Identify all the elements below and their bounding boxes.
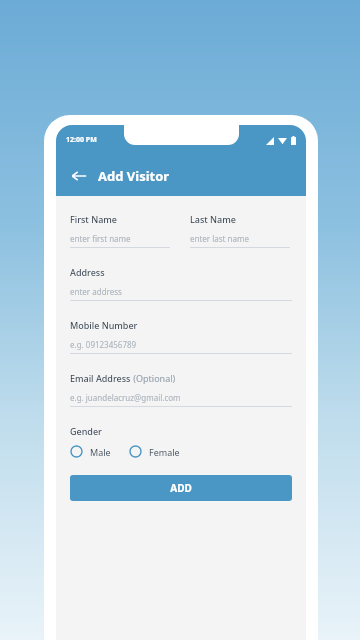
button[interactable]: Last Name <box>190 213 290 248</box>
button[interactable]: Email Address <box>70 372 292 407</box>
button[interactable]: Back <box>68 165 90 187</box>
staticText: e.g. juandelacruz@gmail.com <box>70 392 181 403</box>
staticText: Add Visitor <box>98 167 170 185</box>
staticText: Mobile Number <box>70 319 138 331</box>
staticText: Address <box>70 266 105 278</box>
staticText: Last Name <box>190 213 236 225</box>
staticText: Email Address <box>70 372 131 384</box>
staticText: First Name <box>70 213 117 225</box>
button[interactable]: ADD <box>70 475 292 501</box>
button[interactable]: First Name <box>70 213 170 248</box>
staticText: 12:00 PM <box>66 135 97 145</box>
button[interactable]: Address <box>70 266 292 301</box>
staticText: Male <box>90 446 111 458</box>
staticText: (Optional) <box>131 372 176 384</box>
staticText: enter first name <box>70 233 131 244</box>
staticText: Female <box>149 446 180 458</box>
staticText: enter address <box>70 286 122 297</box>
button[interactable]: Female <box>129 445 180 458</box>
staticText: enter last name <box>190 233 250 244</box>
staticText: ADD <box>170 481 192 495</box>
staticText: e.g. 09123456789 <box>70 339 137 350</box>
staticText: Gender <box>70 425 102 437</box>
button[interactable]: Male <box>70 445 111 458</box>
button[interactable]: Mobile Number <box>70 319 292 354</box>
